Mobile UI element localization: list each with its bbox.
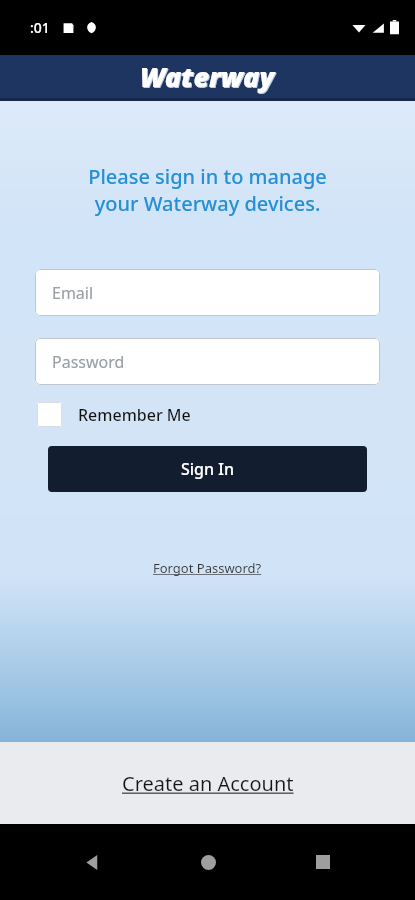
button[interactable]: Recent apps — [299, 838, 347, 886]
button[interactable]: Password — [35, 338, 380, 385]
staticText: Remember Me — [78, 404, 191, 426]
staticText: Password — [52, 351, 125, 373]
staticText: Create an Account — [122, 770, 294, 797]
button[interactable]: Email — [35, 269, 380, 316]
staticText: :01 — [30, 18, 50, 37]
button[interactable]: Back — [68, 838, 116, 886]
staticText: Please sign in to manage your Waterway d… — [0, 163, 415, 217]
staticText: Forgot Password? — [153, 559, 262, 577]
button[interactable]: Sign In — [48, 446, 367, 492]
staticText: Email — [52, 282, 94, 304]
staticText: Sign In — [181, 458, 234, 480]
button[interactable]: Forgot Password? — [145, 555, 270, 581]
button[interactable]: Remember Me — [37, 402, 199, 427]
staticText: Waterway — [140, 58, 275, 95]
staticText: Waterway — [141, 59, 276, 96]
button[interactable]: Create an Account — [110, 762, 306, 805]
button[interactable]: Home — [184, 838, 232, 886]
